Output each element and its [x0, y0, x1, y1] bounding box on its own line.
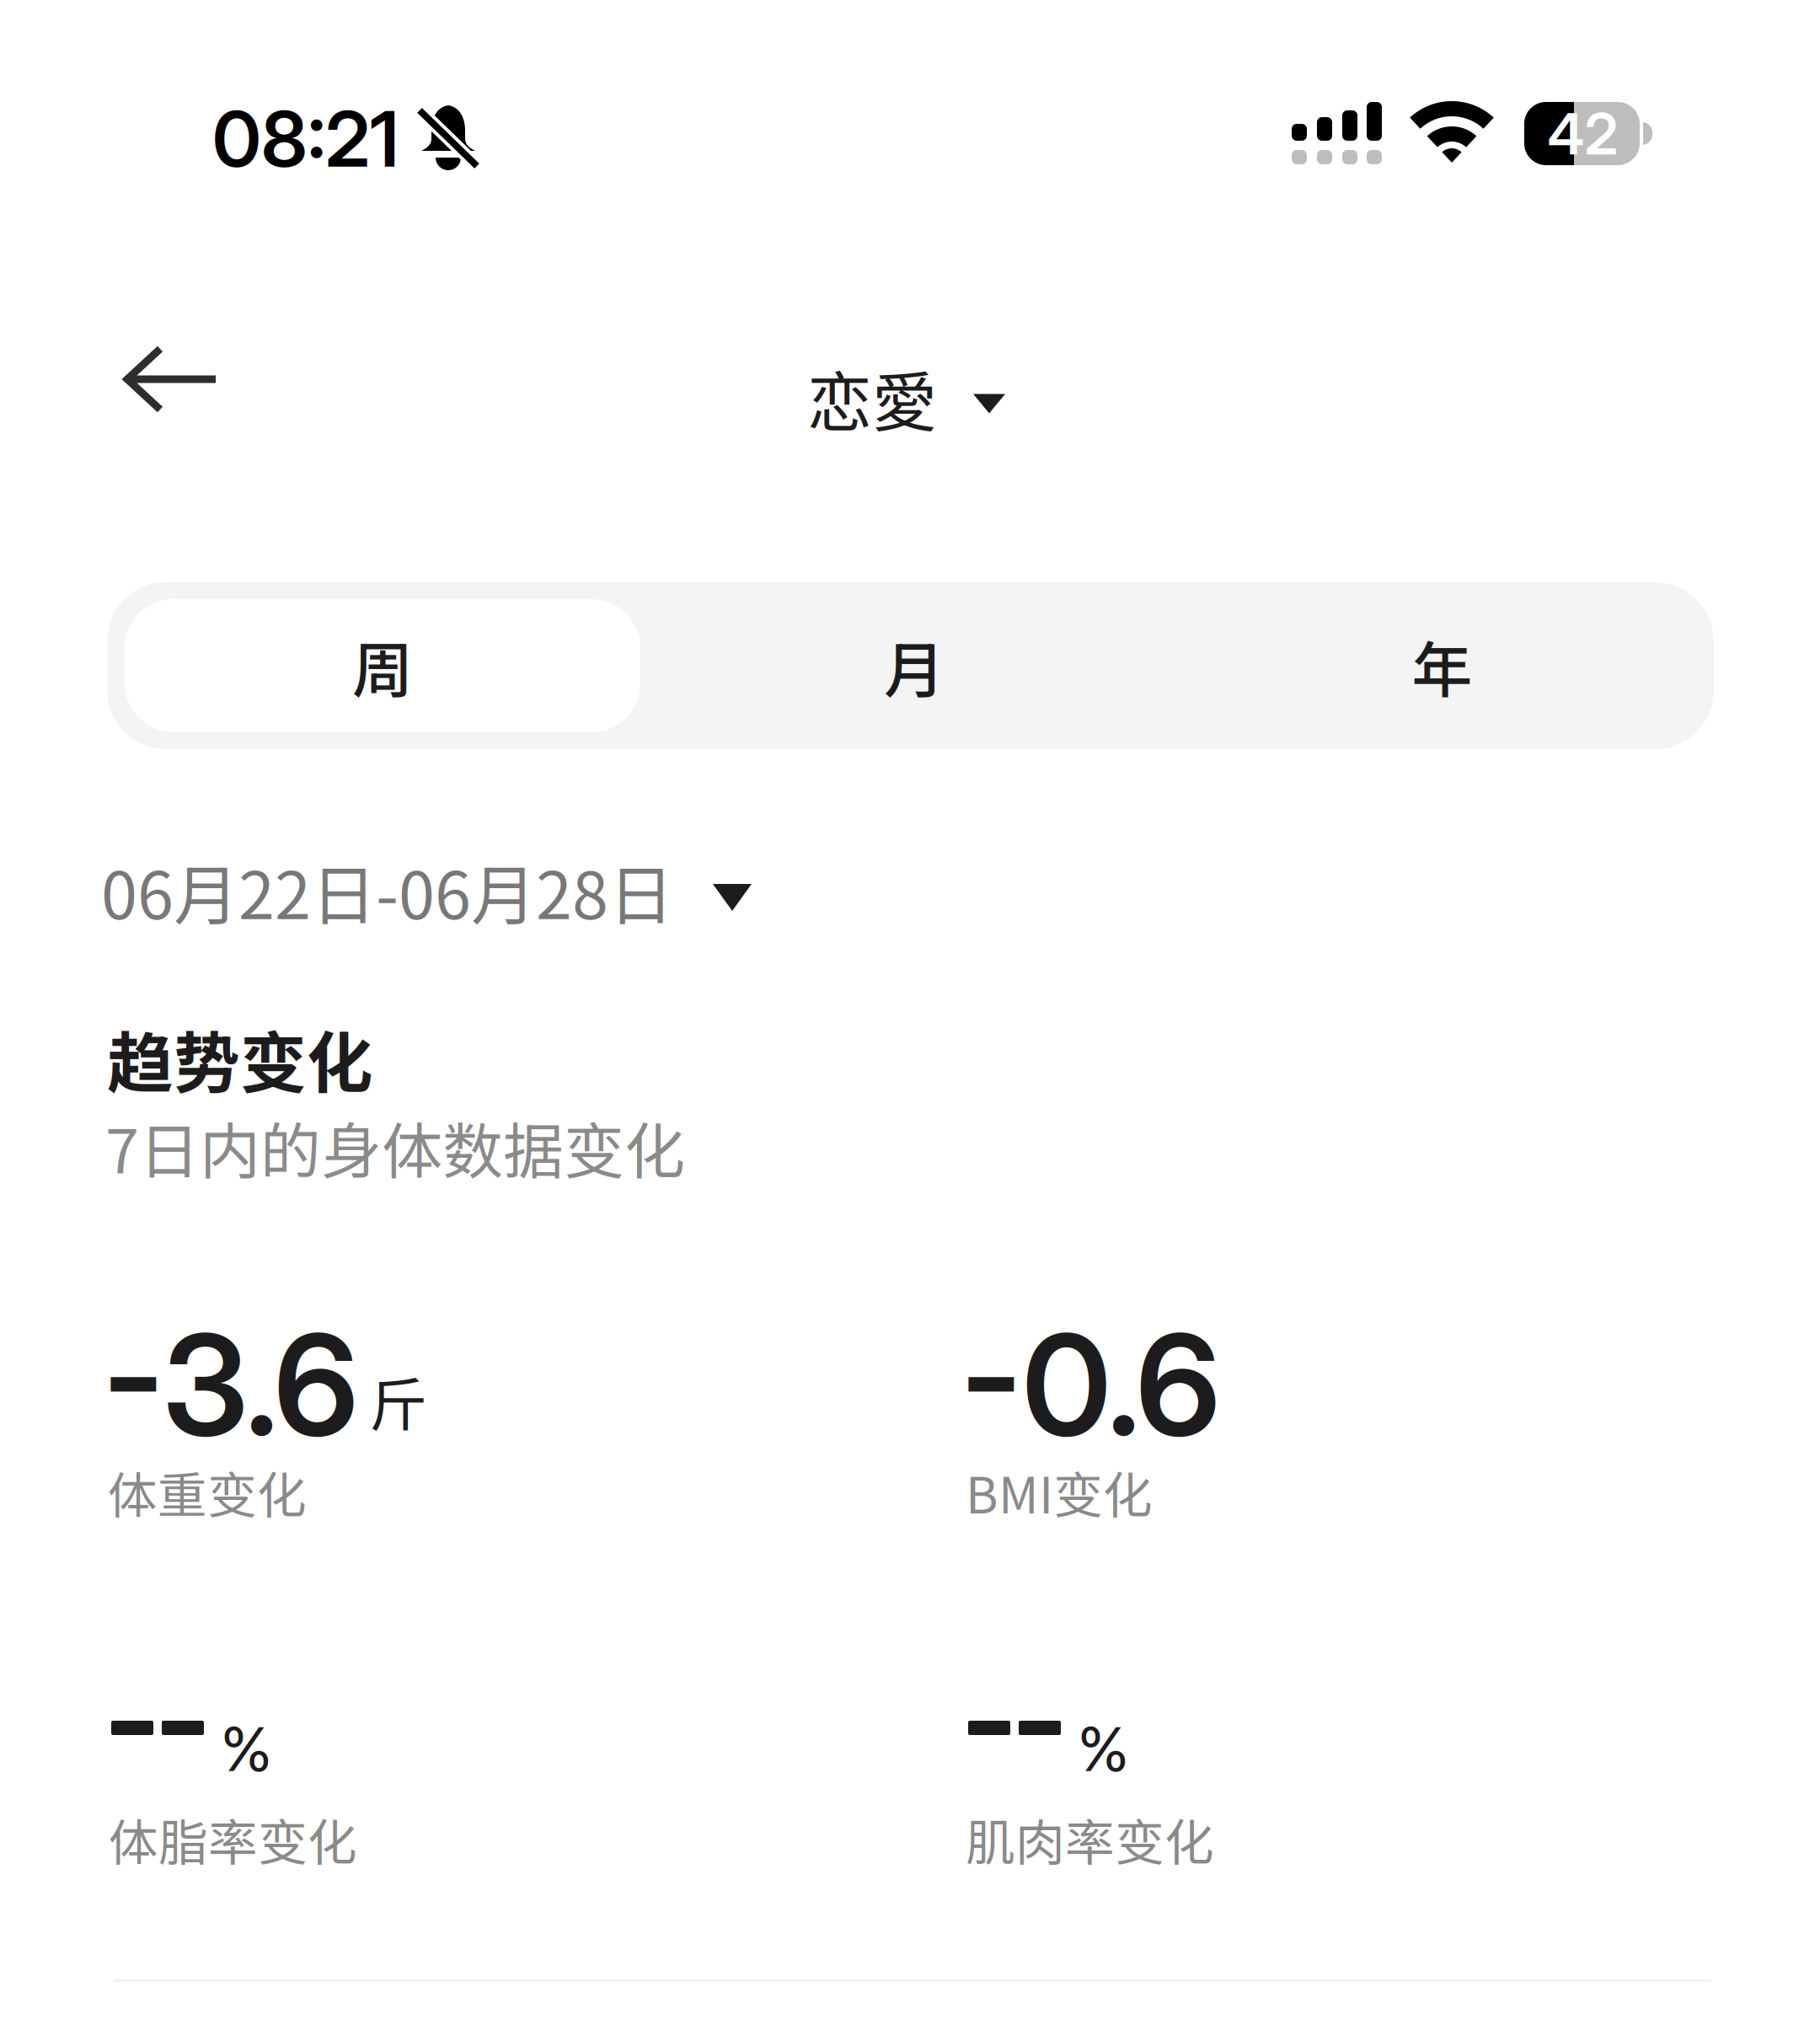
button[interactable]: %	[109, 1711, 951, 1896]
staticText: 06月22日-06月28日	[101, 843, 673, 938]
staticText: %	[1078, 1712, 1129, 1786]
button[interactable]: -3.6	[103, 1300, 945, 1519]
staticText: BMI变化	[966, 1456, 1153, 1528]
staticText: 斤	[369, 1358, 427, 1443]
button[interactable]: 恋愛	[807, 357, 1005, 438]
staticText: 42	[1547, 99, 1618, 168]
staticText: 体脂率变化	[109, 1803, 357, 1875]
button[interactable]: 周	[125, 599, 640, 732]
button[interactable]: -0.6	[961, 1300, 1803, 1519]
staticText: 肌肉率变化	[966, 1803, 1214, 1875]
staticText: 体重变化	[108, 1456, 307, 1528]
staticText: 周	[352, 622, 413, 710]
staticText: 月	[884, 622, 945, 710]
button[interactable]: 年	[1188, 599, 1696, 732]
button[interactable]: %	[966, 1711, 1808, 1896]
staticText: 7日内的身体数据变化	[105, 1103, 685, 1191]
button[interactable]: Back	[98, 322, 246, 436]
staticText: 08:21	[212, 93, 399, 185]
staticText: 年	[1412, 622, 1472, 710]
staticText: 趋势变化	[107, 1010, 373, 1106]
staticText: %	[221, 1712, 272, 1786]
staticText: -0.6	[961, 1300, 1220, 1469]
staticText: -3.6	[103, 1300, 358, 1469]
staticText: 恋愛	[807, 351, 937, 445]
button[interactable]: 月	[640, 599, 1188, 732]
button[interactable]: 06月22日-06月28日	[101, 853, 752, 929]
